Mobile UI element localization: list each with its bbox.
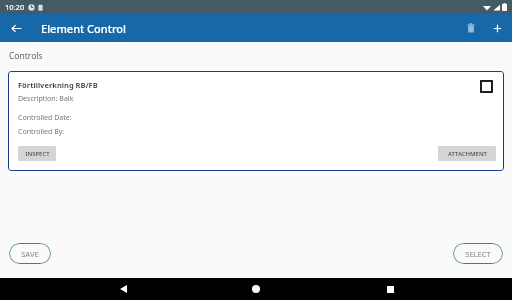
button[interactable]: INSPECT xyxy=(18,146,56,161)
button[interactable]: Add xyxy=(488,19,506,37)
staticText: SAVE xyxy=(21,249,39,259)
button[interactable]: Back xyxy=(7,19,25,37)
staticText: ATTACHMENT xyxy=(448,150,487,158)
button[interactable]: SAVE xyxy=(9,243,51,264)
button[interactable]: Förtillverkning RB/FB xyxy=(8,71,504,171)
button[interactable]: ATTACHMENT xyxy=(438,146,496,161)
staticText: Förtillverkning RB/FB xyxy=(18,80,98,90)
button[interactable]: Back xyxy=(112,278,134,300)
button[interactable]: Delete xyxy=(462,19,480,37)
staticText: Controlled Date: xyxy=(18,113,72,123)
button[interactable]: SELECT xyxy=(453,243,503,264)
staticText: 10:20 xyxy=(5,2,25,12)
staticText: SELECT xyxy=(465,249,491,259)
staticText: Controlled By: xyxy=(18,127,65,137)
button[interactable]: Recent apps xyxy=(379,278,401,300)
staticText: INSPECT xyxy=(25,150,50,158)
button[interactable]: Control completed checkbox xyxy=(477,77,495,95)
staticText: Description: Balk xyxy=(18,94,74,104)
button[interactable]: Home xyxy=(245,278,267,300)
staticText: Controls xyxy=(9,50,43,62)
staticText: Element Control xyxy=(41,21,127,36)
